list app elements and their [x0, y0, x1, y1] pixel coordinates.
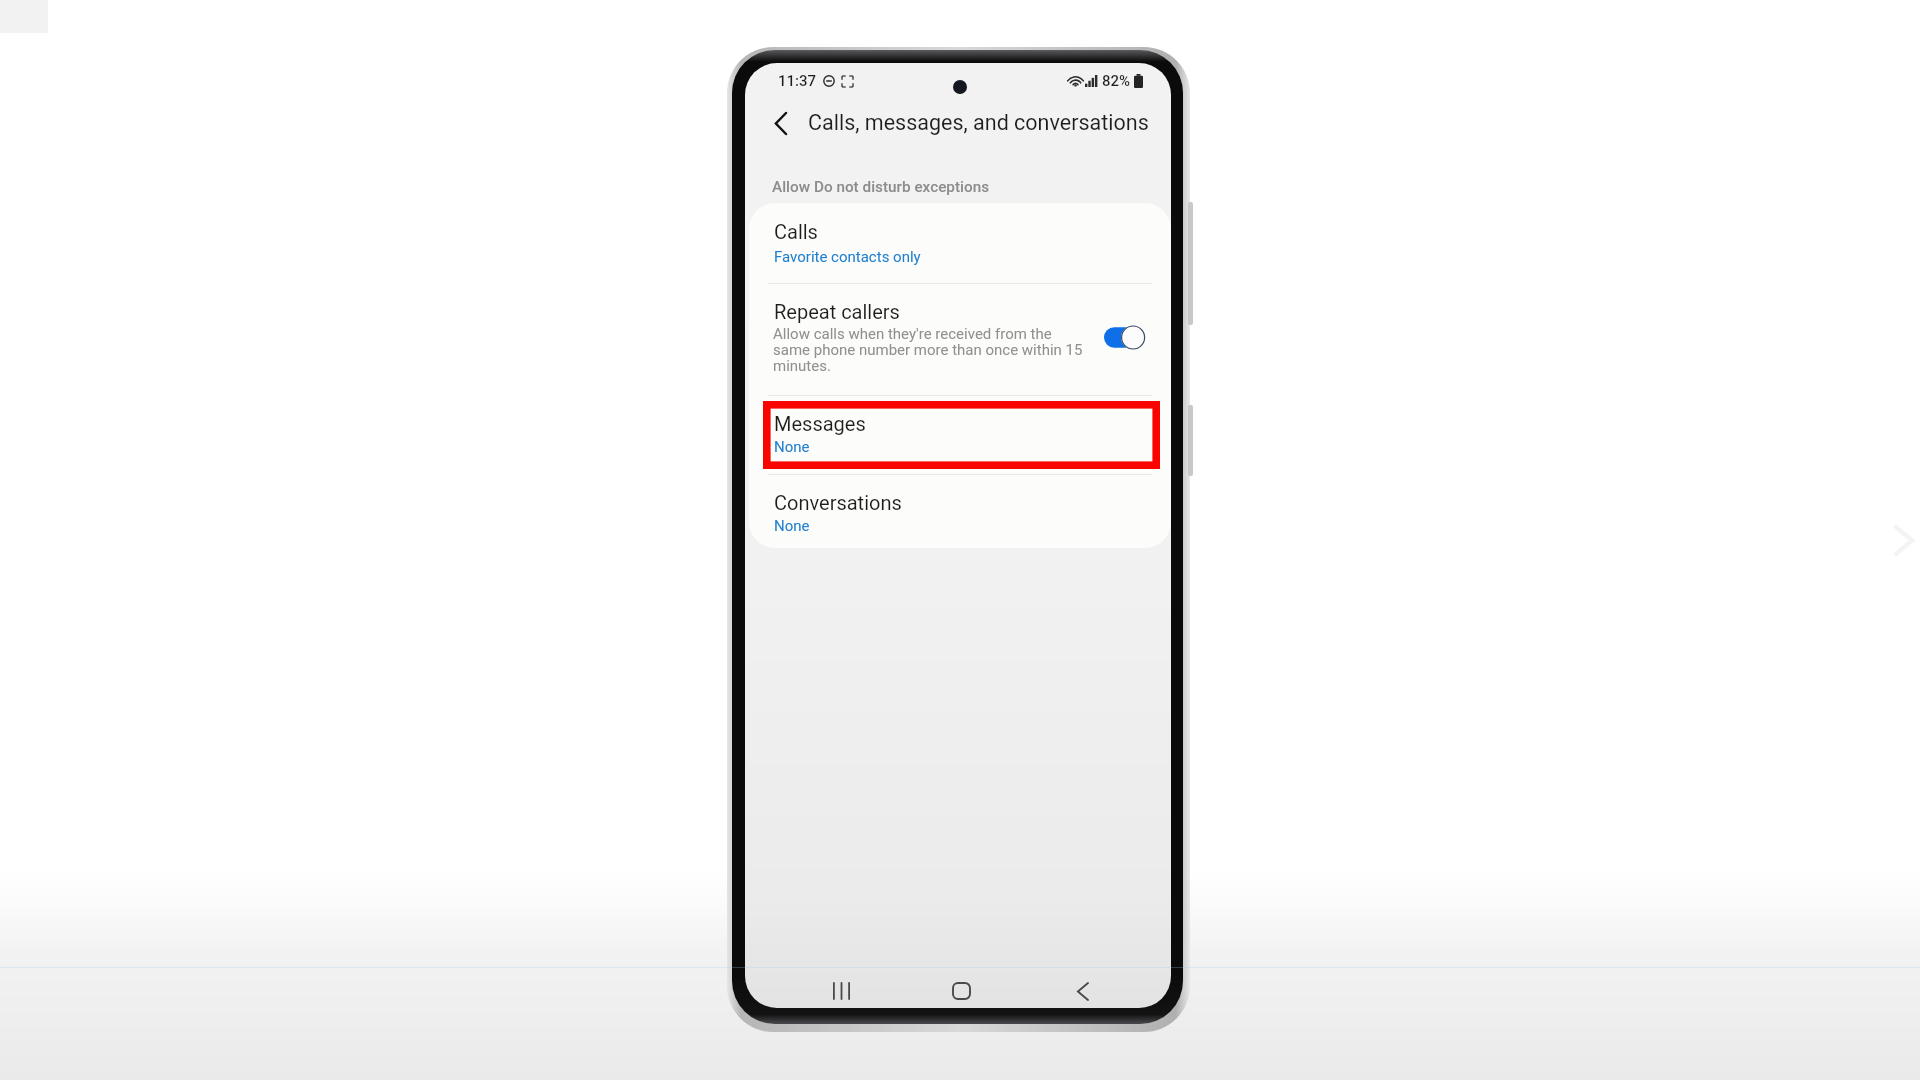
button[interactable]: Messages	[745, 395, 1171, 474]
button[interactable]: Back	[761, 104, 799, 142]
button[interactable]: Calls	[745, 203, 1171, 283]
staticText: None	[774, 517, 810, 535]
button[interactable]: Recents	[811, 970, 871, 1008]
button[interactable]: Back	[1052, 970, 1112, 1008]
staticText: None	[774, 438, 810, 456]
staticText: 82%	[1102, 72, 1131, 90]
staticText: 11:37	[778, 72, 817, 90]
staticText: Repeat callers	[774, 300, 900, 323]
staticText: Conversations	[774, 491, 902, 514]
staticText: Favorite contacts only	[774, 248, 921, 266]
staticText: Allow calls when they're received from t…	[773, 325, 1089, 375]
button[interactable]: Home	[931, 970, 991, 1008]
button[interactable]: Conversations	[745, 474, 1171, 548]
staticText: Calls	[774, 220, 818, 243]
staticText: Calls, messages, and conversations	[808, 110, 1149, 135]
button[interactable]: Repeat callers	[745, 283, 1171, 395]
button[interactable]: Next slide	[1888, 524, 1920, 557]
staticText: Allow Do not disturb exceptions	[772, 178, 990, 196]
button[interactable]: Repeat callers toggle	[1104, 325, 1145, 350]
staticText: Messages	[774, 412, 866, 435]
